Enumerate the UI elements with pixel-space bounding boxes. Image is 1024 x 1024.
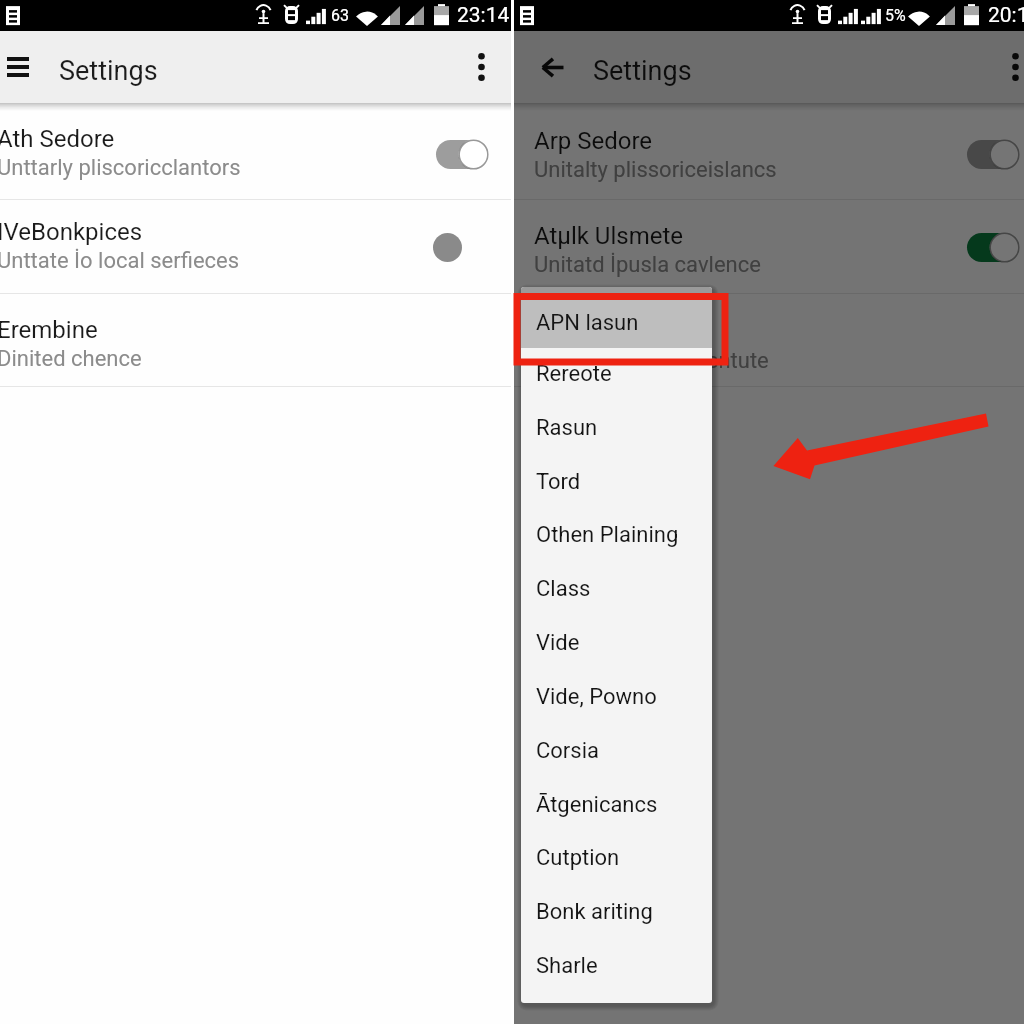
staticText: Erembine <box>534 318 635 346</box>
staticText: Othen Plaining <box>536 522 679 548</box>
staticText: Unitalty plissoriceislancs <box>534 157 777 183</box>
staticText: Ath Sedore <box>0 125 115 153</box>
staticText: Tord <box>536 469 581 495</box>
button[interactable]: Erembine <box>0 294 512 387</box>
button[interactable]: Cutption <box>521 832 712 886</box>
staticText: Dinited chence <box>0 346 142 372</box>
button[interactable]: Arp Sedore <box>514 108 1024 200</box>
button[interactable]: IVeBonkpices <box>0 200 512 294</box>
button[interactable]: More options <box>991 31 1024 103</box>
button[interactable]: Atμlk Ulsmete <box>514 200 1024 294</box>
staticText: IVeBonkpices <box>0 218 143 246</box>
staticText: Vide <box>536 630 580 656</box>
button[interactable]: Rasun <box>521 402 712 456</box>
staticText: Settings <box>59 55 158 87</box>
staticText: Corsia <box>536 738 599 764</box>
button[interactable]: Sharle <box>521 940 712 994</box>
button[interactable]: Vide <box>521 617 712 671</box>
button[interactable]: Navigate up <box>528 31 576 103</box>
button[interactable]: More options <box>457 31 505 103</box>
button[interactable]: Vide, Powno <box>521 671 712 725</box>
staticText: Ātgenicancs <box>536 792 658 818</box>
staticText: Rereote <box>536 361 612 387</box>
button[interactable]: Bonk ariting <box>521 886 712 940</box>
staticText: Atμlk Ulsmete <box>534 222 684 250</box>
button[interactable]: Class <box>521 563 712 617</box>
staticText: 63 <box>331 6 349 25</box>
staticText: APN lasun <box>536 310 639 336</box>
staticText: 20:13 <box>988 3 1024 28</box>
button[interactable]: Tord <box>521 456 712 510</box>
button[interactable]: Corsia <box>521 725 712 779</box>
staticText: Settings <box>593 55 692 87</box>
staticText: Class <box>536 576 591 602</box>
staticText: 23:14 <box>457 3 510 28</box>
staticText: Cutption <box>536 845 620 871</box>
staticText: Vide, Powno <box>536 684 657 710</box>
staticText: Rasun <box>536 415 598 441</box>
staticText: 5% <box>885 6 906 25</box>
button[interactable]: Othen Plaining <box>521 509 712 563</box>
staticText: Bonk ariting <box>536 899 653 925</box>
staticText: Erembine <box>0 316 98 344</box>
staticText: Dinited chenceı lnsntute <box>534 348 769 374</box>
button[interactable]: Ath Sedore <box>0 108 512 200</box>
button[interactable]: Ātgenicancs <box>521 779 712 833</box>
button[interactable]: Rereote <box>521 348 712 402</box>
staticText: Sharle <box>536 953 598 979</box>
button[interactable]: Erembine <box>514 294 1024 387</box>
staticText: Unttate İo local serfieces <box>0 248 240 274</box>
button[interactable]: Open navigation drawer <box>0 31 42 103</box>
staticText: Unttarly pliscoricclantors <box>0 155 241 181</box>
staticText: Unitatd İpusla cavlence <box>534 252 761 278</box>
staticText: Arp Sedore <box>534 127 653 155</box>
button[interactable]: APN lasun <box>521 300 712 348</box>
